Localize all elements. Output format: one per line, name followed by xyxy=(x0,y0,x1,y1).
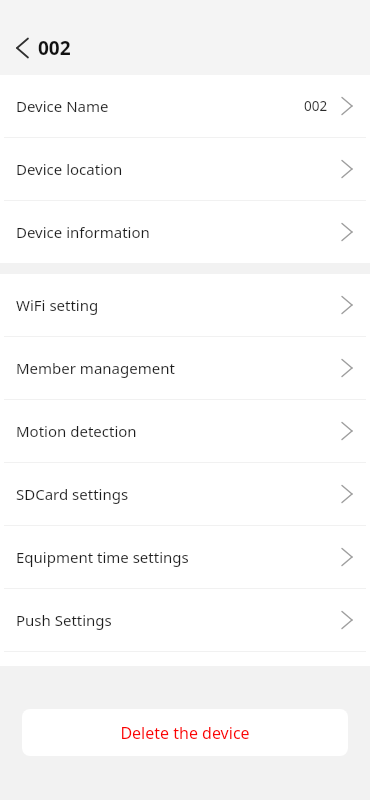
button[interactable]: SDCard settings xyxy=(0,463,370,525)
staticText: Delete the device xyxy=(120,722,250,744)
staticText: Device location xyxy=(16,159,123,179)
button[interactable]: Delete the device xyxy=(22,709,348,756)
staticText: 002 xyxy=(38,35,71,61)
staticText: Equipment time settings xyxy=(16,547,189,567)
button[interactable]: WiFi setting xyxy=(0,274,370,336)
staticText: 002 xyxy=(304,97,328,115)
button[interactable]: Push Settings xyxy=(0,589,370,651)
staticText: Push Settings xyxy=(16,610,112,630)
staticText: Device information xyxy=(16,222,150,242)
button[interactable]: Equipment time settings xyxy=(0,526,370,588)
staticText: SDCard settings xyxy=(16,484,129,504)
staticText: Motion detection xyxy=(16,421,137,441)
button[interactable]: Member management xyxy=(0,337,370,399)
staticText: Device Name xyxy=(16,96,109,116)
button[interactable]: Device location xyxy=(0,138,370,200)
button[interactable]: Device information xyxy=(0,201,370,263)
button[interactable]: Back xyxy=(10,31,79,65)
button[interactable]: Device Name xyxy=(0,75,370,137)
staticText: WiFi setting xyxy=(16,295,99,315)
staticText: Member management xyxy=(16,358,175,378)
button[interactable]: Motion detection xyxy=(0,400,370,462)
